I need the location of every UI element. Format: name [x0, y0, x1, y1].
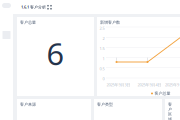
staticText: 客户来源: [20, 102, 36, 107]
button[interactable]: 客户类型: [94, 99, 162, 120]
staticText: 2: [102, 36, 104, 41]
button[interactable]: Menu: [2, 3, 11, 8]
staticText: 2025年9: [165, 82, 179, 87]
staticText: 2025年9月4日: [137, 82, 161, 87]
button[interactable]: Navigation item: [2, 31, 10, 39]
staticText: 0.5: [99, 66, 104, 71]
staticText: 6: [46, 33, 64, 74]
staticText: 2.5: [99, 26, 104, 31]
staticText: 客户总量: [20, 20, 36, 25]
button[interactable]: Layout options: [47, 5, 51, 9]
staticText: 客户类型: [97, 102, 113, 107]
staticText: 客户总量: [154, 91, 170, 96]
staticText: 新增客户数: [100, 20, 120, 25]
staticText: 1.6.1 客户分析: [21, 4, 46, 10]
button[interactable]: 客户来源: [17, 99, 91, 120]
staticText: 0: [102, 76, 104, 81]
staticText: 2025年9月3日: [106, 82, 130, 87]
staticText: 客户区域: [168, 102, 172, 120]
staticText: 1.5: [99, 46, 104, 51]
staticText: 1: [102, 56, 104, 61]
button[interactable]: 客户区域: [165, 99, 180, 120]
